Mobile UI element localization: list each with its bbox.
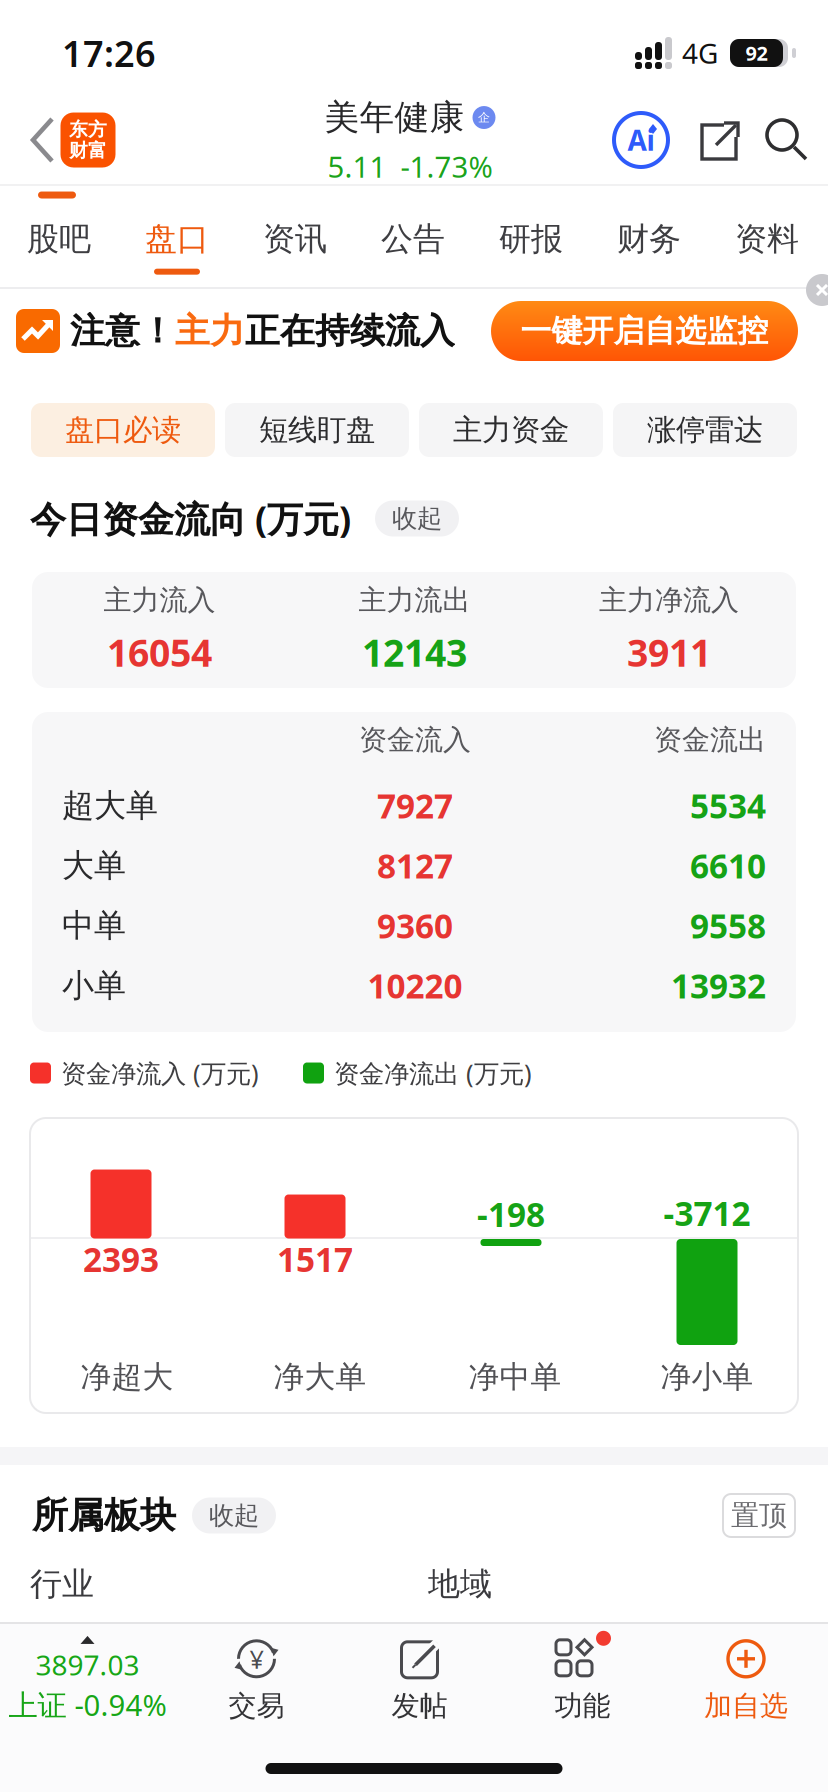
- staticText: 主力流入: [103, 583, 215, 617]
- staticText: 5534: [690, 783, 766, 828]
- staticText: 小单: [62, 966, 126, 1005]
- button[interactable]: 收起: [375, 500, 459, 536]
- staticText: 涨停雷达: [647, 412, 763, 448]
- button[interactable]: ¥: [175, 1632, 338, 1728]
- staticText: 4G: [682, 34, 718, 72]
- button[interactable]: 加自选: [664, 1632, 828, 1728]
- staticText: 发帖: [391, 1689, 447, 1723]
- staticText: 17:26: [62, 29, 156, 77]
- staticText: 1517: [277, 1237, 353, 1281]
- staticText: 置顶: [731, 1498, 787, 1533]
- button[interactable]: Back: [28, 117, 58, 163]
- staticText: 2393: [83, 1237, 159, 1281]
- staticText: 盘口: [145, 219, 209, 259]
- staticText: 13932: [671, 963, 766, 1008]
- button[interactable]: 发帖: [338, 1632, 501, 1728]
- button[interactable]: 地域: [428, 1564, 492, 1604]
- staticText: 交易: [228, 1689, 284, 1723]
- staticText: 一键开启自选监控: [520, 312, 768, 350]
- button[interactable]: 功能: [501, 1632, 664, 1728]
- staticText: 功能: [554, 1689, 610, 1723]
- staticText: 主力净流入: [599, 583, 739, 617]
- button[interactable]: Share: [694, 117, 740, 163]
- staticText: 3911: [627, 627, 711, 677]
- button[interactable]: 3897.03: [0, 1632, 175, 1728]
- staticText: 短线盯盘: [259, 412, 375, 448]
- staticText: 财富: [69, 139, 107, 162]
- staticText: -1.73%: [400, 147, 492, 186]
- button[interactable]: 研报: [472, 212, 590, 282]
- staticText: 行业: [30, 1564, 94, 1604]
- staticText: 92: [745, 40, 767, 66]
- staticText: 净大单: [273, 1358, 366, 1396]
- button[interactable]: Close: [806, 274, 828, 306]
- button[interactable]: 东方财富: [60, 112, 115, 167]
- staticText: 9360: [377, 903, 453, 948]
- button[interactable]: 短线盯盘: [225, 403, 409, 457]
- staticText: 主力资金: [453, 412, 569, 448]
- staticText: 超大单: [62, 786, 158, 825]
- button[interactable]: 财务: [590, 212, 708, 282]
- button[interactable]: 资料: [708, 212, 826, 282]
- staticText: 企: [478, 110, 490, 125]
- staticText: 9558: [690, 903, 766, 948]
- staticText: 资讯: [263, 219, 327, 259]
- staticText: 中单: [62, 906, 126, 945]
- staticText: 主力: [175, 310, 245, 352]
- staticText: 资料: [735, 219, 799, 259]
- staticText: 股吧: [27, 219, 91, 259]
- staticText: 今日资金流向 (万元): [30, 495, 351, 542]
- button[interactable]: Ai: [612, 111, 670, 169]
- staticText: 5.11: [327, 147, 386, 186]
- staticText: 8127: [377, 843, 453, 888]
- staticText: 东方: [69, 118, 107, 141]
- staticText: 7927: [377, 783, 453, 828]
- staticText: 地域: [428, 1564, 492, 1604]
- staticText: 资金净流入 (万元): [61, 1056, 259, 1090]
- staticText: 净超大: [80, 1358, 173, 1396]
- staticText: 公告: [381, 219, 445, 259]
- staticText: 净中单: [468, 1358, 561, 1396]
- staticText: 3897.03: [35, 1646, 139, 1683]
- staticText: 资金净流出 (万元): [334, 1056, 532, 1090]
- staticText: ¥: [249, 1642, 263, 1676]
- staticText: 主力流出: [358, 583, 470, 617]
- staticText: 盘口必读: [65, 412, 181, 448]
- staticText: 美年健康: [324, 96, 464, 139]
- staticText: 收起: [209, 1500, 259, 1531]
- staticText: 资金流入: [359, 723, 471, 757]
- staticText: 大单: [62, 846, 126, 885]
- button[interactable]: 盘口: [118, 212, 236, 282]
- staticText: 正在持续流入: [245, 310, 455, 352]
- staticText: 净小单: [660, 1358, 753, 1396]
- staticText: 6610: [690, 843, 766, 888]
- staticText: 注意！: [70, 310, 175, 352]
- button[interactable]: 收起: [192, 1497, 276, 1533]
- button[interactable]: 主力资金: [419, 403, 603, 457]
- staticText: 所属板块: [32, 1493, 176, 1538]
- button[interactable]: 一键开启自选监控: [491, 301, 798, 361]
- staticText: 资金流出: [654, 723, 766, 757]
- button[interactable]: 公告: [354, 212, 472, 282]
- button[interactable]: 行业: [30, 1564, 94, 1604]
- button[interactable]: 股吧: [0, 212, 118, 282]
- staticText: -198: [477, 1192, 545, 1236]
- staticText: 10220: [367, 963, 462, 1008]
- staticText: 上证 -0.94%: [8, 1685, 166, 1724]
- staticText: 12143: [362, 627, 467, 677]
- staticText: 收起: [392, 503, 442, 534]
- button[interactable]: 置顶: [723, 1494, 795, 1537]
- button[interactable]: Search: [764, 117, 810, 163]
- staticText: -3712: [663, 1191, 750, 1235]
- staticText: Ai: [627, 121, 654, 159]
- staticText: 研报: [499, 219, 563, 259]
- button[interactable]: 盘口必读: [31, 403, 215, 457]
- button[interactable]: 涨停雷达: [613, 403, 797, 457]
- staticText: 加自选: [704, 1689, 788, 1723]
- button[interactable]: 资讯: [236, 212, 354, 282]
- staticText: 16054: [107, 627, 212, 677]
- staticText: 财务: [617, 219, 681, 259]
